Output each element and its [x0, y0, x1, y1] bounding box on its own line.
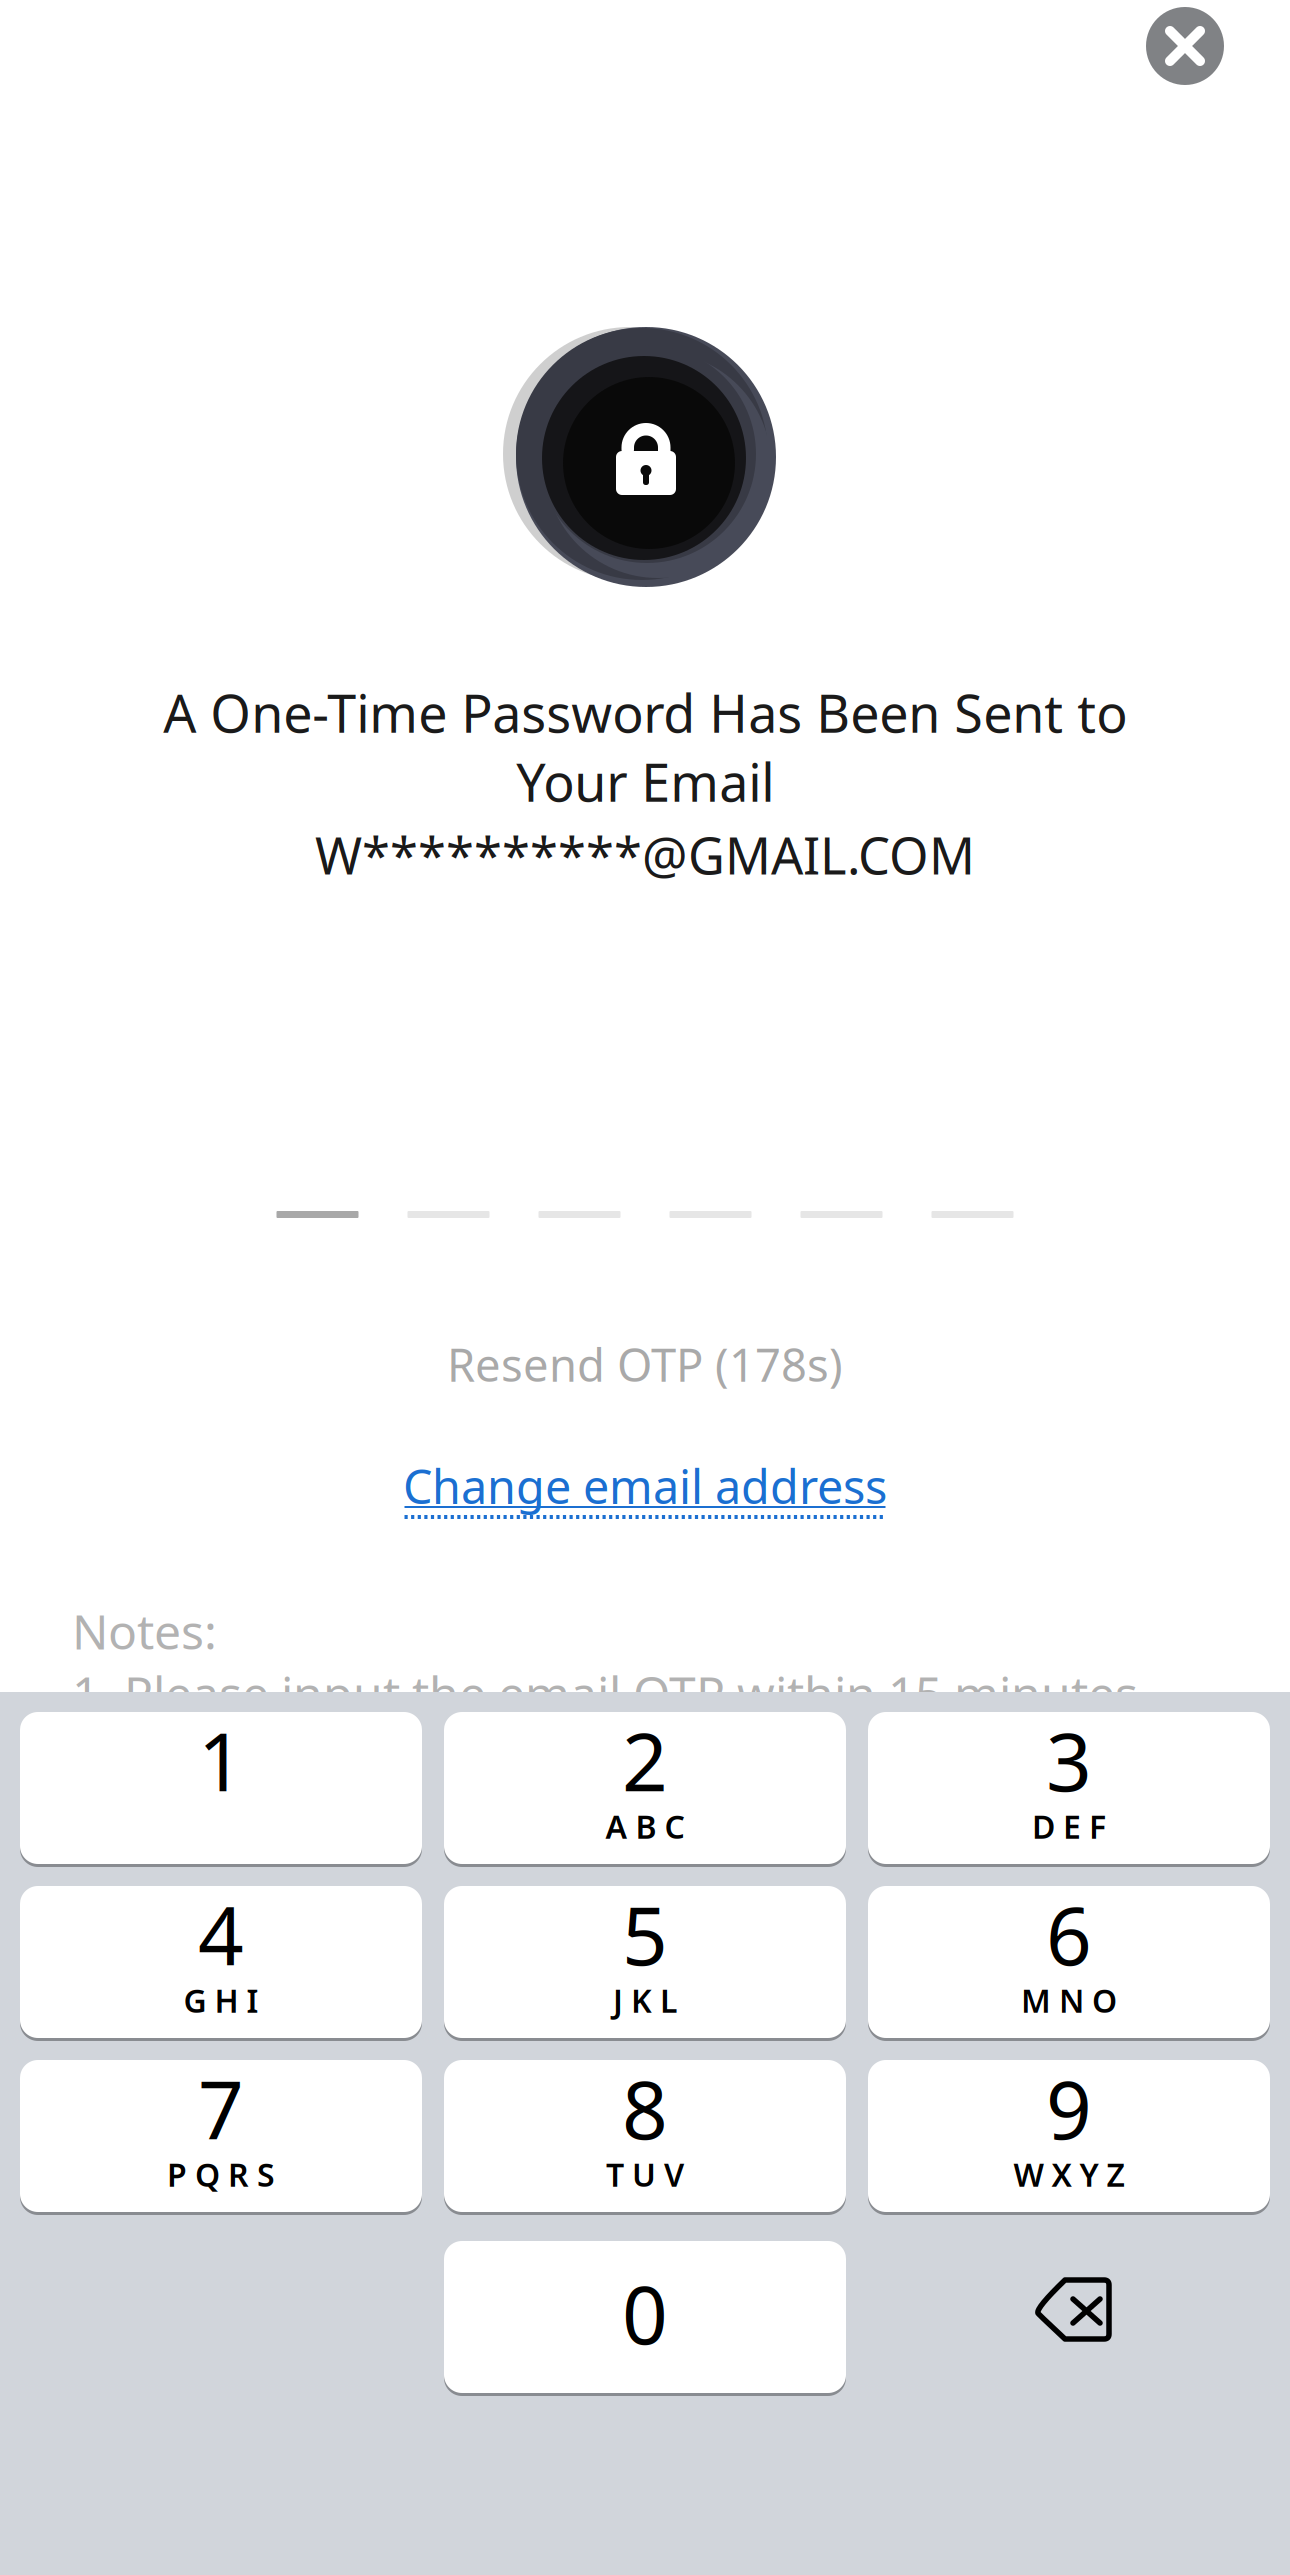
button[interactable]: 4 [20, 1886, 422, 2041]
staticText: 4 [198, 1881, 244, 1987]
staticText: 0 [622, 2260, 668, 2366]
button[interactable]: Delete [868, 2241, 1270, 2396]
staticText: W X Y Z [1013, 2153, 1124, 2195]
button[interactable]: 7 [20, 2060, 422, 2215]
staticText: W**********@GMAIL.COM [315, 821, 975, 888]
button[interactable]: 2 [444, 1712, 846, 1867]
staticText: A B C [605, 1805, 684, 1847]
staticText: P Q R S [167, 2153, 275, 2195]
staticText: Notes: [72, 1599, 217, 1663]
staticText: 1. Please input the email OTP within 15 … [72, 1661, 1151, 1725]
staticText: 1 [198, 1707, 244, 1813]
button[interactable]: 6 [868, 1886, 1270, 2041]
button[interactable]: 1 [20, 1712, 422, 1867]
staticText: 7 [198, 2055, 244, 2161]
button[interactable]: 8 [444, 2060, 846, 2215]
button[interactable]: 0 [444, 2241, 846, 2396]
button[interactable]: 9 [868, 2060, 1270, 2215]
staticText: A One-Time Password Has Been Sent to You… [163, 678, 1127, 816]
button[interactable]: 5 [444, 1886, 846, 2041]
staticText: Change email address [403, 1455, 887, 1517]
staticText: 3 [1046, 1707, 1092, 1813]
staticText: 2 [622, 1707, 668, 1813]
staticText: T U V [606, 2153, 684, 2195]
staticText: D E F [1032, 1805, 1106, 1847]
staticText: 6 [1046, 1881, 1092, 1987]
staticText: 8 [622, 2055, 668, 2161]
staticText: J K L [613, 1979, 677, 2021]
staticText: Resend OTP (178s) [447, 1334, 843, 1394]
staticText: 9 [1046, 2055, 1092, 2161]
staticText: 5 [622, 1881, 668, 1987]
button[interactable]: 3 [868, 1712, 1270, 1867]
button[interactable]: Change email address [0, 1455, 1290, 1533]
staticText: M N O [1021, 1979, 1117, 2021]
staticText: G H I [183, 1979, 258, 2021]
